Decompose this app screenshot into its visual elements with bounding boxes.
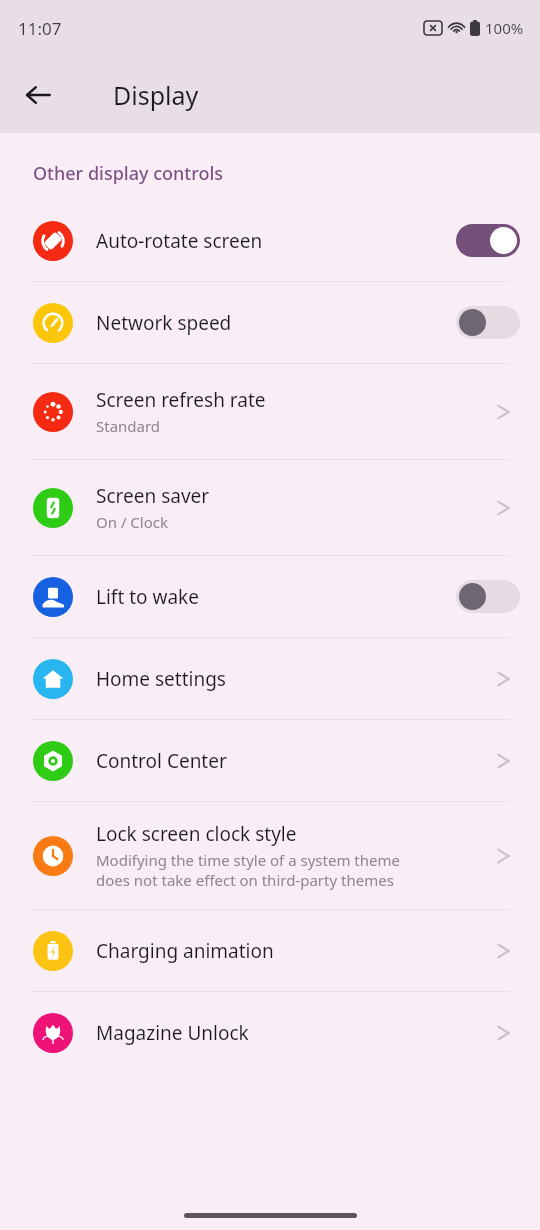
- staticText: Charging animation: [96, 938, 274, 964]
- staticText: Display: [113, 78, 199, 112]
- staticText: Network speed: [96, 310, 232, 336]
- button[interactable]: Screen refresh rate: [0, 364, 540, 459]
- button[interactable]: Toggle off: [456, 306, 520, 339]
- staticText: Other display controls: [33, 161, 224, 186]
- staticText: On / Clock: [96, 512, 169, 532]
- staticText: 11:07: [18, 17, 62, 40]
- staticText: Control Center: [96, 748, 227, 774]
- staticText: Lift to wake: [96, 584, 199, 610]
- button[interactable]: Control Center: [0, 720, 540, 801]
- button[interactable]: Screen saver: [0, 460, 540, 555]
- button[interactable]: Home settings: [0, 638, 540, 719]
- staticText: Standard: [96, 416, 161, 436]
- button[interactable]: Toggle on: [456, 224, 520, 257]
- staticText: Magazine Unlock: [96, 1020, 249, 1046]
- staticText: 100%: [485, 18, 524, 38]
- button[interactable]: Back: [10, 67, 66, 123]
- button[interactable]: Lock screen clock style: [0, 802, 540, 909]
- button[interactable]: Toggle off: [456, 580, 520, 613]
- button[interactable]: Network speed: [0, 282, 540, 363]
- staticText: Screen refresh rate: [96, 387, 266, 413]
- button[interactable]: Auto-rotate screen: [0, 200, 540, 281]
- button[interactable]: Lift to wake: [0, 556, 540, 637]
- button[interactable]: Charging animation: [0, 910, 540, 991]
- button[interactable]: Magazine Unlock: [0, 992, 540, 1073]
- staticText: Screen saver: [96, 483, 210, 509]
- staticText: Lock screen clock style: [96, 821, 297, 847]
- staticText: Modifying the time style of a system the…: [96, 850, 400, 890]
- staticText: Home settings: [96, 666, 226, 692]
- staticText: Auto-rotate screen: [96, 228, 263, 254]
